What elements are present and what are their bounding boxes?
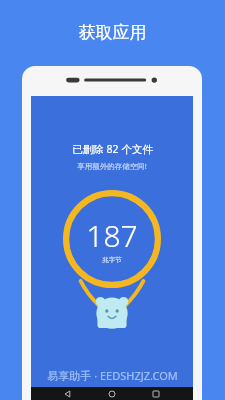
button[interactable]: 187 bbox=[63, 190, 161, 288]
staticText: 兆字节 bbox=[102, 256, 122, 264]
button[interactable]: Recent apps bbox=[149, 387, 163, 400]
staticText: 187 bbox=[86, 215, 138, 256]
staticText: 已删除 82 个文件 bbox=[72, 142, 153, 156]
staticText: 易享助手 · EEDSHZJZ.COM bbox=[47, 368, 178, 383]
button[interactable]: Home bbox=[105, 387, 119, 400]
staticText: 享用额外的存储空间! bbox=[77, 161, 147, 171]
button[interactable]: Back bbox=[61, 387, 75, 400]
staticText: 获取应用 bbox=[0, 22, 225, 43]
other: Happy storage mascot bbox=[85, 288, 139, 330]
